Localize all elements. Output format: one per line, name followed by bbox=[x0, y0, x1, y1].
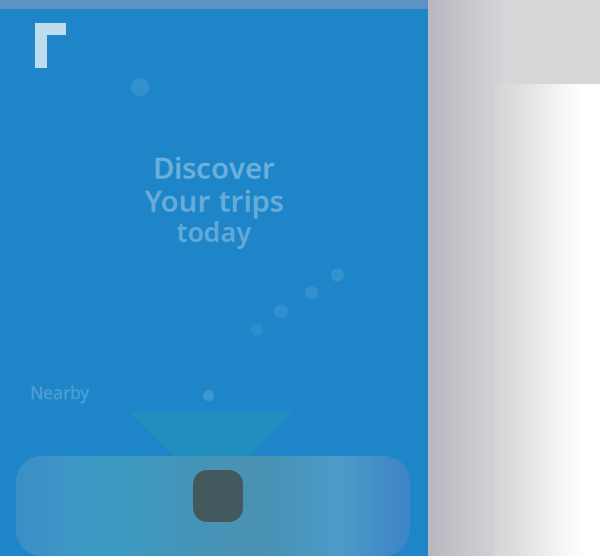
staticText: Nearby bbox=[30, 381, 89, 404]
button[interactable]: Home bbox=[34, 23, 67, 68]
staticText: Your trips bbox=[144, 181, 283, 220]
staticText: Discover bbox=[153, 148, 275, 187]
button[interactable]: Scan bbox=[193, 470, 243, 522]
staticText: today bbox=[176, 214, 251, 249]
